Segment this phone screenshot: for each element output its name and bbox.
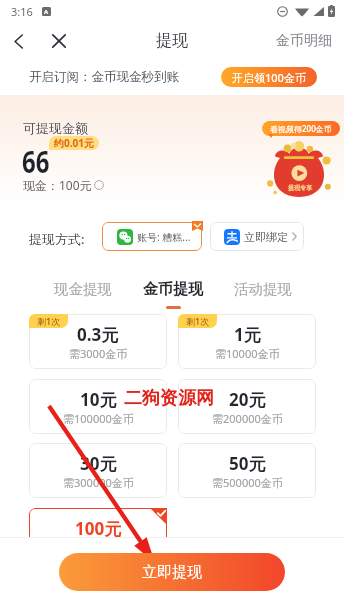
staticText: 1元 [234,323,261,346]
staticText: 立即提现 [142,563,202,582]
button[interactable]: 看视频得200金币 [262,121,340,136]
staticText: 现金：100元 [23,177,92,193]
button[interactable]: Back [5,28,31,54]
staticText: 66 [22,141,50,182]
staticText: 开启订阅：金币现金秒到账 [29,69,179,85]
button[interactable]: 活动提现 [228,280,298,308]
staticText: 提现 [156,31,188,51]
staticText: 100元 [75,517,122,540]
staticText: 金币提现 [143,280,203,299]
button[interactable]: 立即绑定 [224,222,304,251]
staticText: 需100000金币 [63,411,134,426]
button[interactable]: 开启领100金币 [221,67,317,87]
staticText: 开启领100金币 [232,70,306,85]
staticText: 需500000金币 [212,475,283,490]
button[interactable]: 50元 [178,443,316,498]
staticText: 立即绑定 [244,230,288,244]
button[interactable]: 0.3元 [29,314,167,369]
staticText: 看视频得200金币 [270,123,332,134]
staticText: 需10000金币 [215,346,280,361]
staticText: 3:16 [11,4,33,19]
staticText: 50元 [229,452,266,475]
staticText: 二狗资源网 [124,387,214,410]
staticText: 需200000金币 [212,411,283,426]
staticText: 30元 [80,452,117,475]
staticText: 需3000金币 [69,346,128,361]
staticText: 现金提现 [54,280,112,298]
button[interactable]: 立即提现 [59,553,285,591]
button[interactable]: 金币明细 [270,27,338,55]
staticText: 10元 [80,388,117,411]
staticText: 活动提现 [234,280,292,298]
staticText: 账号: 糟糕... [137,230,191,244]
staticText: 20元 [229,388,266,411]
button[interactable]: 账号: 糟糕... [117,222,202,251]
button[interactable]: Close [46,28,72,54]
staticText: 金币明细 [276,32,332,50]
button[interactable]: 金币提现 [138,280,208,309]
staticText: 提现方式: [29,230,85,248]
staticText: 需1000000金币 [59,540,137,555]
button[interactable]: 100元 [29,508,167,563]
staticText: 需300000金币 [63,475,134,490]
staticText: 提现专享 [288,184,312,192]
staticText: 约0.01元 [54,136,94,150]
button[interactable]: 现金提现 [48,280,118,308]
staticText: 剩1次 [186,315,210,327]
staticText: 0.3元 [77,323,119,346]
staticText: 剩1次 [37,315,61,327]
staticText: A [44,8,49,16]
button[interactable]: 1元 [178,314,316,369]
button[interactable]: 10元 [29,379,167,434]
staticText: 可提现金额 [23,120,88,136]
button[interactable]: 30元 [29,443,167,498]
button[interactable]: 20元 [178,379,316,434]
button[interactable]: Watch video for 200 coins [268,142,330,198]
